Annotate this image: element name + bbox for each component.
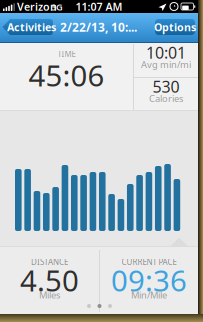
button[interactable]: Activities	[0, 0, 198, 43]
staticText: 10:01	[146, 42, 186, 63]
staticText: CURRENT PACE	[121, 257, 176, 267]
staticText: Activities	[7, 20, 56, 34]
staticText: 09:36	[111, 260, 187, 299]
staticText: Verizon	[17, 0, 57, 14]
staticText: Options	[154, 20, 196, 34]
staticText: 11:07 AM	[75, 0, 122, 14]
staticText: Miles	[39, 289, 60, 301]
button[interactable]: Options	[0, 0, 198, 43]
staticText: TIME	[57, 49, 75, 59]
staticText: DISTANCE	[31, 257, 68, 267]
staticText: 530	[152, 76, 179, 97]
staticText: Min/Mile	[131, 289, 167, 301]
staticText: Avg min/mi	[141, 58, 191, 71]
staticText: 45:06	[28, 55, 104, 94]
staticText: 3G	[51, 1, 63, 13]
staticText: Calories	[149, 92, 183, 105]
staticText: 4.50	[20, 260, 79, 299]
staticText: 2/22/13, 10:...	[60, 19, 137, 35]
